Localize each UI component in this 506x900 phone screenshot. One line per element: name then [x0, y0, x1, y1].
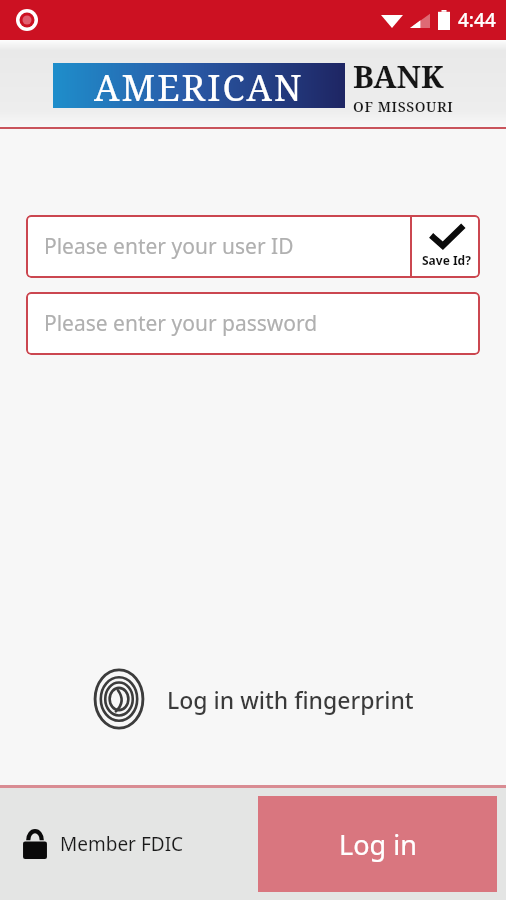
staticText: 4:44: [458, 7, 496, 33]
button[interactable]: Save Id: [412, 215, 480, 278]
staticText: Log in with fingerprint: [167, 684, 414, 715]
staticText: Save Id?: [422, 252, 471, 268]
staticText: Log in: [339, 826, 417, 863]
staticText: Member FDIC: [60, 831, 184, 857]
button[interactable]: Please enter your password: [26, 292, 480, 355]
button[interactable]: Please enter your user ID: [26, 215, 480, 278]
staticText: AMERICAN: [94, 63, 304, 108]
button[interactable]: Log in with fingerprint: [0, 668, 506, 730]
staticText: Please enter your password: [44, 309, 318, 338]
staticText: OF MISSOURI: [353, 97, 454, 116]
staticText: Please enter your user ID: [44, 232, 294, 261]
button[interactable]: Log in: [258, 796, 497, 892]
staticText: BANK: [353, 55, 444, 97]
button[interactable]: Member FDIC: [22, 828, 184, 860]
